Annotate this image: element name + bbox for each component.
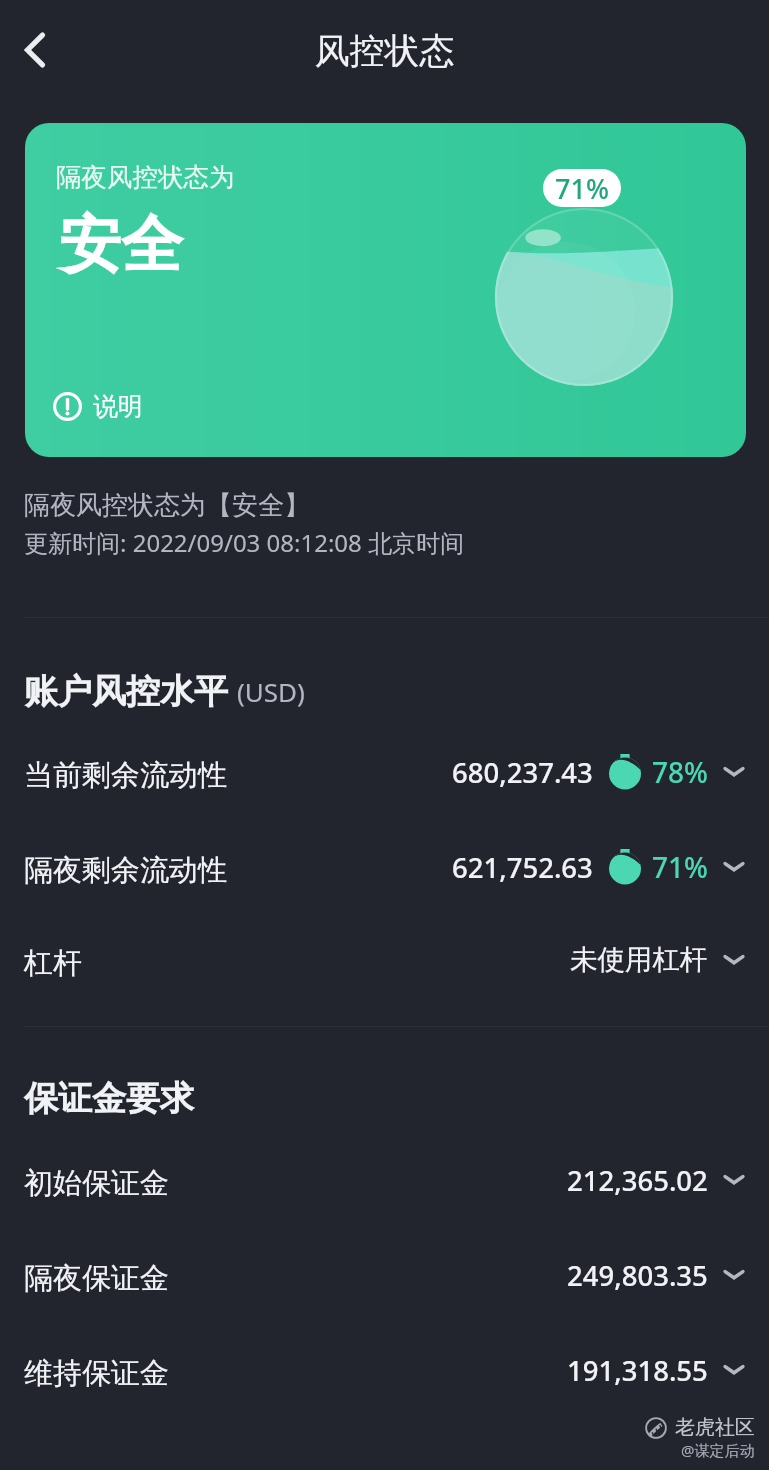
staticText: 78% xyxy=(652,753,708,791)
button[interactable]: 隔夜保证金 xyxy=(0,1231,769,1325)
staticText: 风控状态 xyxy=(0,29,769,73)
staticText: 隔夜风控状态为 xyxy=(56,161,235,193)
staticText: 账户风控水平 xyxy=(24,670,228,713)
button[interactable]: 初始保证金 xyxy=(0,1136,769,1230)
staticText: 212,365.02 xyxy=(567,1162,708,1199)
staticText: 隔夜剩余流动性 xyxy=(24,852,227,889)
staticText: 71% xyxy=(652,848,708,886)
staticText: 680,237.43 xyxy=(452,754,593,791)
button[interactable]: Back xyxy=(5,20,65,80)
staticText: @谋定后动 xyxy=(681,1440,755,1460)
staticText: 249,803.35 xyxy=(567,1257,708,1294)
staticText: 621,752.63 xyxy=(452,849,593,886)
staticText: 维持保证金 xyxy=(24,1355,169,1392)
staticText: 老虎社区 xyxy=(675,1415,755,1440)
staticText: 隔夜保证金 xyxy=(24,1260,169,1297)
button[interactable]: 71% xyxy=(25,123,746,457)
button[interactable]: 杠杆 xyxy=(0,916,769,1010)
staticText: 说明 xyxy=(93,391,143,422)
staticText: 更新时间: 2022/09/03 08:12:08 北京时间 xyxy=(24,526,465,559)
staticText: 隔夜风控状态为【安全】 xyxy=(24,489,310,522)
button[interactable]: 当前剩余流动性 xyxy=(0,728,769,822)
staticText: 191,318.55 xyxy=(567,1352,708,1389)
button[interactable]: 维持保证金 xyxy=(0,1326,769,1420)
button[interactable]: 隔夜剩余流动性 xyxy=(0,823,769,917)
staticText: 初始保证金 xyxy=(24,1165,169,1202)
staticText: 保证金要求 xyxy=(24,1077,194,1120)
button[interactable]: 说明 xyxy=(53,391,143,422)
staticText: 杠杆 xyxy=(24,945,82,982)
staticText: 安全 xyxy=(59,206,183,284)
staticText: 未使用杠杆 xyxy=(570,943,708,978)
staticText: (USD) xyxy=(237,674,305,709)
staticText: 当前剩余流动性 xyxy=(24,757,227,794)
staticText: 71% xyxy=(555,170,609,207)
